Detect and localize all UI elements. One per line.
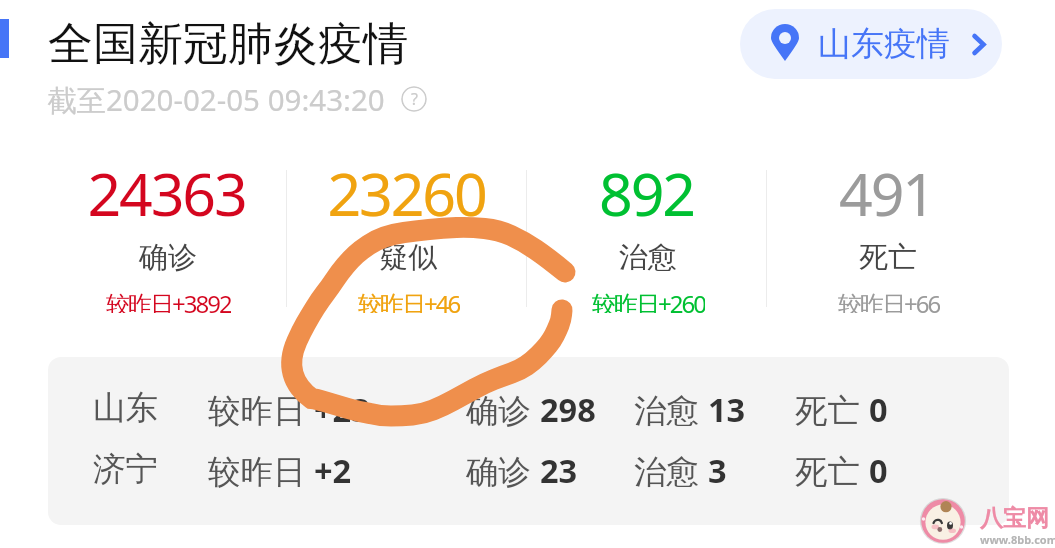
staticText: 892	[599, 153, 694, 233]
staticText: 较昨日+260	[592, 287, 705, 313]
staticText: 死亡	[859, 239, 917, 276]
staticText: 23	[540, 448, 578, 492]
staticText: 确诊	[466, 448, 540, 492]
button[interactable]: 山东	[48, 357, 1009, 525]
staticText: 全国新冠肺炎疫情	[48, 16, 408, 73]
staticText: 0	[869, 448, 888, 492]
staticText: 截至2020-02-05 09:43:20	[47, 79, 385, 119]
staticText: +2	[314, 448, 352, 492]
staticText: ?	[411, 88, 418, 110]
staticText: 较昨日	[208, 387, 314, 431]
staticText: 治愈	[619, 239, 677, 276]
staticText: 较昨日+66	[838, 287, 940, 313]
staticText: 治愈	[634, 387, 708, 431]
button[interactable]: 23260	[287, 148, 526, 313]
staticText: 较昨日+46	[358, 287, 460, 313]
staticText: 治愈	[634, 448, 708, 492]
staticText: 确诊	[139, 239, 197, 276]
staticText: 死亡	[795, 448, 869, 492]
staticText: 疑似	[379, 239, 437, 276]
staticText: 491	[839, 153, 934, 233]
button[interactable]: 山东疫情	[740, 9, 1002, 79]
staticText: 死亡	[795, 387, 869, 431]
button[interactable]: 491	[767, 148, 1006, 313]
button[interactable]: 24363	[47, 148, 286, 313]
staticText: 0	[869, 387, 888, 431]
button[interactable]: 892	[527, 148, 766, 313]
button[interactable]: 济宁	[48, 439, 1009, 500]
staticText: 较昨日	[208, 448, 314, 492]
staticText: 确诊	[466, 387, 540, 431]
staticText: 3	[708, 448, 727, 492]
button[interactable]: Help	[401, 86, 427, 112]
staticText: 13	[708, 387, 746, 431]
staticText: +23	[314, 387, 370, 431]
staticText: 山东疫情	[818, 23, 950, 65]
staticText: www.8bb.com	[980, 532, 1055, 547]
staticText: 八宝网	[980, 504, 1049, 533]
staticText: 山东	[93, 388, 158, 429]
staticText: 24363	[87, 153, 246, 233]
staticText: 济宁	[93, 449, 158, 490]
staticText: 23260	[327, 153, 486, 233]
staticText: 298	[540, 387, 596, 431]
staticText: 较昨日+3892	[106, 287, 231, 313]
button[interactable]: 山东	[48, 378, 1009, 439]
